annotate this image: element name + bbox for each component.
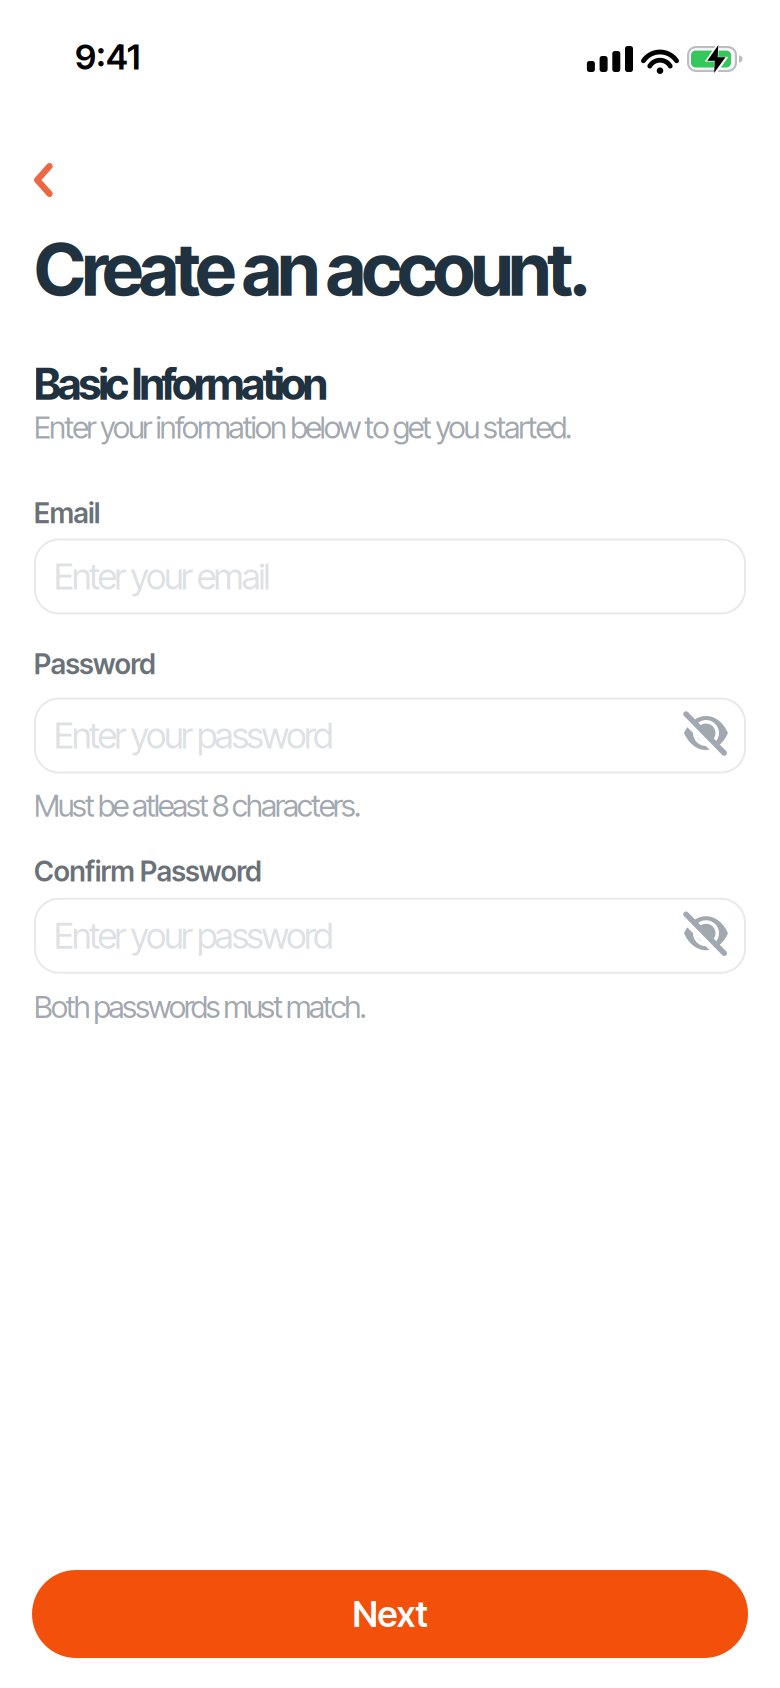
staticText: Confirm Password [34, 855, 261, 888]
staticText: Enter your password [54, 714, 333, 757]
button[interactable]: Next [32, 1570, 748, 1658]
staticText: Must be atleast 8 characters. [34, 787, 361, 824]
staticText: 9:41 [75, 37, 140, 77]
staticText: Next [352, 1593, 427, 1635]
textField[interactable]: Enter your email [54, 563, 726, 590]
staticText: Password [34, 647, 155, 680]
button[interactable]: Show password [684, 913, 728, 953]
staticText: Create an account. [34, 227, 591, 312]
staticText: Enter your information below to get you … [34, 409, 572, 445]
staticText: Basic Information [34, 359, 328, 409]
textField[interactable]: Enter your password [54, 922, 666, 949]
staticText: Enter your email [54, 555, 270, 598]
staticText: Email [34, 496, 100, 529]
staticText: Enter your password [54, 722, 252, 749]
staticText: Enter your email [54, 563, 207, 590]
button[interactable]: Back [34, 163, 53, 197]
staticText: Both passwords must match. [34, 989, 366, 1025]
staticText: Enter your password [54, 914, 333, 957]
staticText: Enter your password [54, 922, 252, 949]
button[interactable]: Show password [684, 713, 728, 753]
textField[interactable]: Enter your password [54, 722, 666, 749]
